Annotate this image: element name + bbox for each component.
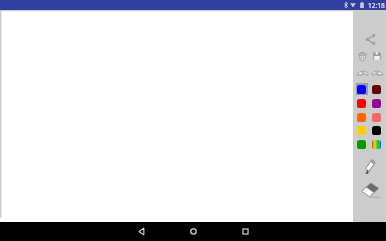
- button[interactable]: Colour: [355, 83, 368, 95]
- button[interactable]: Colour: [370, 111, 383, 123]
- button[interactable]: Pencil: [365, 159, 375, 174]
- button[interactable]: Share: [365, 34, 376, 45]
- button[interactable]: Colour: [355, 97, 368, 109]
- button[interactable]: Undo: [357, 69, 368, 75]
- button[interactable]: Colour: [370, 97, 383, 109]
- staticText: 12:18: [368, 1, 385, 10]
- button[interactable]: Back: [128, 222, 154, 241]
- button[interactable]: Eraser: [361, 182, 380, 198]
- button[interactable]: Colour: [355, 124, 368, 136]
- button[interactable]: Colour: [370, 138, 383, 150]
- button[interactable]: Delete: [358, 52, 367, 61]
- button[interactable]: Save: [373, 52, 381, 60]
- button[interactable]: Redo: [372, 69, 383, 75]
- button[interactable]: Colour: [355, 138, 368, 150]
- button[interactable]: Colour: [355, 111, 368, 123]
- button[interactable]: Recents: [232, 222, 258, 241]
- button[interactable]: Colour: [370, 124, 383, 136]
- button[interactable]: Colour: [370, 83, 383, 95]
- button[interactable]: Home: [180, 222, 206, 241]
